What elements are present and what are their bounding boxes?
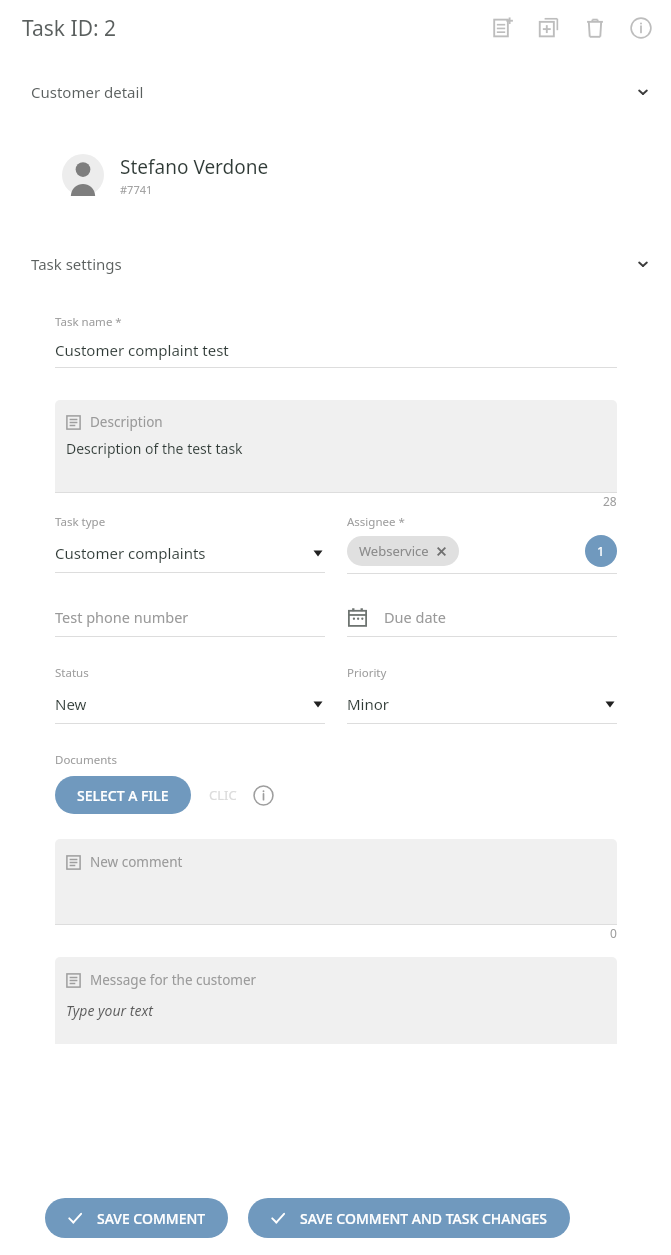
- button[interactable]: SAVE COMMENT: [45, 1198, 228, 1238]
- staticText: Task ID: 2: [22, 14, 117, 43]
- staticText: Status: [55, 665, 89, 681]
- staticText: SAVE COMMENT AND TASK CHANGES: [300, 1209, 548, 1228]
- button[interactable]: SAVE COMMENT AND TASK CHANGES: [248, 1198, 570, 1238]
- button[interactable]: Add note: [485, 10, 521, 46]
- staticText: Minor: [347, 694, 390, 714]
- staticText: SELECT A FILE: [77, 786, 169, 805]
- staticText: New comment: [90, 853, 183, 871]
- button[interactable]: Customer complaints: [55, 543, 325, 563]
- staticText: Description of the test task: [66, 439, 243, 458]
- staticText: 1: [597, 542, 605, 560]
- button[interactable]: New: [55, 694, 325, 714]
- button[interactable]: Description: [55, 400, 617, 492]
- button[interactable]: New comment: [55, 839, 617, 924]
- button[interactable]: Duplicate: [531, 10, 567, 46]
- button[interactable]: File info: [251, 783, 275, 807]
- staticText: 0: [610, 925, 617, 941]
- staticText: Documents: [55, 752, 117, 768]
- staticText: 28: [603, 493, 617, 509]
- staticText: Assignee *: [347, 514, 405, 530]
- button[interactable]: Info: [623, 10, 659, 46]
- button[interactable]: Delete: [577, 10, 613, 46]
- staticText: Test phone number: [55, 607, 189, 627]
- staticText: Due date: [384, 607, 446, 627]
- button[interactable]: Minor: [347, 694, 617, 714]
- staticText: Customer complaints: [55, 543, 206, 563]
- staticText: CLIC: [209, 786, 237, 804]
- staticText: Customer complaint test: [55, 340, 229, 360]
- staticText: Task name *: [55, 314, 122, 330]
- staticText: Task type: [55, 514, 106, 530]
- staticText: New: [55, 694, 87, 714]
- button[interactable]: Due date: [347, 604, 617, 630]
- button[interactable]: Test phone number: [55, 604, 325, 630]
- button[interactable]: SELECT A FILE: [55, 776, 191, 814]
- button[interactable]: Message for the customer: [55, 957, 617, 1044]
- staticText: Description: [90, 413, 163, 431]
- button[interactable]: Webservice: [347, 536, 459, 566]
- staticText: Type your text: [66, 1001, 153, 1020]
- button[interactable]: Task settings: [0, 246, 671, 282]
- staticText: #7741: [120, 182, 153, 197]
- button[interactable]: Customer detail: [0, 74, 671, 110]
- staticText: Priority: [347, 665, 387, 681]
- staticText: Webservice: [359, 542, 429, 560]
- button[interactable]: 1: [585, 535, 617, 567]
- staticText: Stefano Verdone: [120, 154, 269, 180]
- staticText: Task settings: [31, 254, 122, 274]
- staticText: Customer detail: [31, 82, 144, 102]
- staticText: SAVE COMMENT: [97, 1209, 206, 1228]
- button[interactable]: Stefano Verdone: [48, 137, 626, 213]
- button[interactable]: Customer complaint test: [55, 340, 617, 360]
- staticText: Message for the customer: [90, 971, 257, 989]
